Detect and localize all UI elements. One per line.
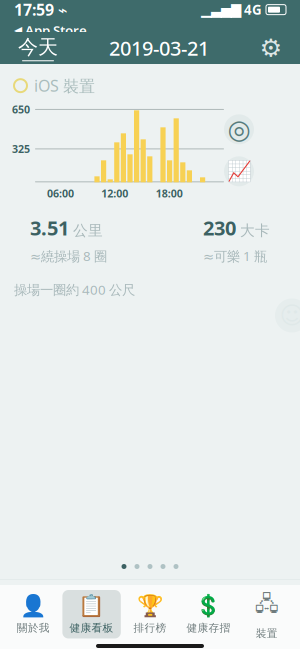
button[interactable]: 今天 xyxy=(12,29,64,67)
button[interactable]: Goal ring xyxy=(224,114,254,144)
staticText: 關於我 xyxy=(17,621,50,634)
staticText: 🏆 xyxy=(136,594,163,618)
staticText: 健康存摺 xyxy=(186,621,230,634)
staticText: 操場一圈約 400 公尺 xyxy=(14,281,135,298)
staticText: 12:00 xyxy=(101,186,128,200)
button[interactable]: 🏆 xyxy=(121,590,179,638)
staticText: ≈可樂 1 瓶 xyxy=(203,247,267,265)
staticText: 📋 xyxy=(78,594,105,618)
staticText: 3.51 xyxy=(30,214,69,241)
staticText: 公里 xyxy=(73,222,103,240)
staticText: 18:00 xyxy=(156,186,183,200)
button[interactable]: Trend chart xyxy=(224,156,254,186)
staticText: 2019-03-21 xyxy=(109,35,209,61)
button[interactable]: Settings xyxy=(254,31,288,65)
staticText: 325 xyxy=(12,142,30,156)
staticText: 💲 xyxy=(195,594,222,618)
staticText: ▁▃▅▇ 4G xyxy=(201,1,262,18)
staticText: 🖧 xyxy=(255,588,279,624)
staticText: ≈繞操場 8 圈 xyxy=(30,247,107,265)
button[interactable]: 📋 xyxy=(62,590,121,638)
staticText: ⚙ xyxy=(259,34,282,62)
staticText: 230 xyxy=(203,214,236,241)
staticText: 健康看板 xyxy=(70,621,114,634)
staticText: 06:00 xyxy=(47,186,74,200)
staticText: 👤 xyxy=(20,594,47,618)
button[interactable]: 💲 xyxy=(179,590,238,638)
button[interactable]: 🖧 xyxy=(238,584,296,644)
button[interactable]: 👤 xyxy=(4,590,62,638)
staticText: ◀ xyxy=(14,24,22,36)
staticText: 650 xyxy=(12,102,30,116)
staticText: App Store xyxy=(25,21,87,39)
button[interactable]: Mood xyxy=(275,298,300,332)
staticText: 今天 xyxy=(18,35,58,59)
staticText: ◎ xyxy=(227,114,250,144)
staticText: 大卡 xyxy=(240,222,270,240)
staticText: iOS 裝置 xyxy=(34,75,95,96)
staticText: 17:59 ⌁ xyxy=(14,0,68,20)
staticText: 📈 xyxy=(226,160,251,183)
staticText: 裝置 xyxy=(256,627,278,640)
staticText: 排行榜 xyxy=(133,621,166,634)
